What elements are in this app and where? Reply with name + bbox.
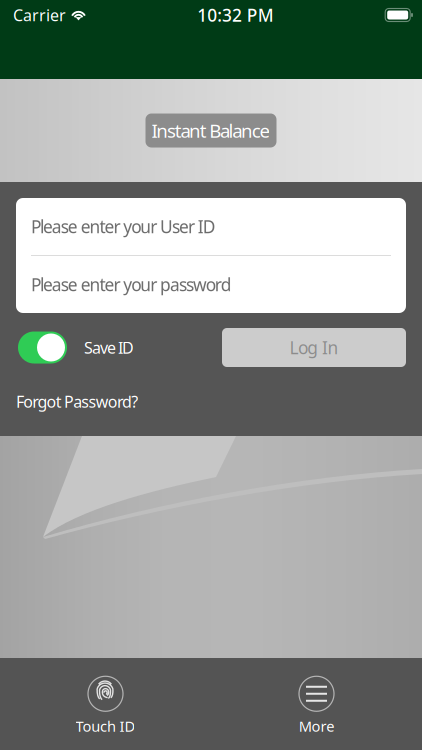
button[interactable]: Forgot Password? bbox=[0, 367, 422, 412]
staticText: Please enter your User ID bbox=[31, 215, 216, 238]
button[interactable]: Log In bbox=[222, 328, 422, 367]
staticText: Touch ID bbox=[75, 716, 135, 736]
button[interactable]: Instant Balance bbox=[145, 113, 276, 147]
staticText: Carrier bbox=[13, 4, 66, 26]
staticText: 10:32 PM bbox=[197, 3, 274, 26]
button[interactable]: Save ID bbox=[0, 331, 134, 363]
staticText: Save ID bbox=[84, 337, 134, 358]
staticText: Please enter your password bbox=[31, 273, 232, 296]
button[interactable]: More bbox=[211, 657, 422, 750]
button[interactable]: Touch ID bbox=[0, 657, 211, 750]
staticText: More bbox=[299, 716, 334, 736]
staticText: Log In bbox=[289, 336, 338, 359]
staticText: Instant Balance bbox=[152, 118, 270, 143]
staticText: Forgot Password? bbox=[16, 391, 138, 412]
